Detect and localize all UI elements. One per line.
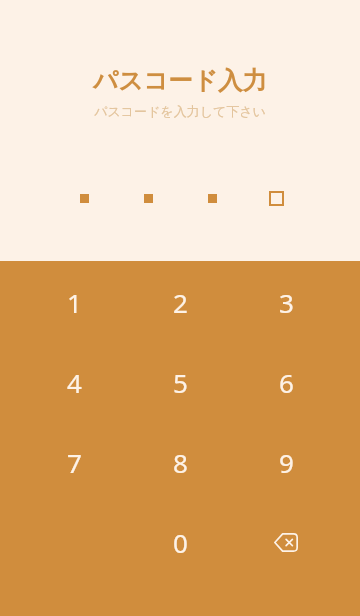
staticText: 1 [67,285,82,320]
staticText: 9 [279,445,294,480]
staticText: 7 [67,445,82,480]
staticText: 5 [173,365,188,400]
button[interactable]: 1 [21,262,127,342]
staticText: 3 [279,285,294,320]
other: Passcode progress [0,188,360,208]
staticText: パスコード入力 [93,65,267,96]
button[interactable]: 8 [127,422,233,502]
staticText: パスコードを入力して下さい [94,103,266,119]
button[interactable]: Delete [233,502,339,582]
button[interactable]: 0 [127,502,233,582]
staticText: 6 [279,365,294,400]
button[interactable]: 3 [233,262,339,342]
button[interactable]: 4 [21,342,127,422]
button[interactable]: 5 [127,342,233,422]
staticText: 0 [173,525,188,560]
staticText: 8 [173,445,188,480]
staticText: 2 [173,285,188,320]
staticText: 4 [67,365,82,400]
button[interactable]: 2 [127,262,233,342]
button[interactable]: 7 [21,422,127,502]
button[interactable]: 6 [233,342,339,422]
button[interactable]: 9 [233,422,339,502]
